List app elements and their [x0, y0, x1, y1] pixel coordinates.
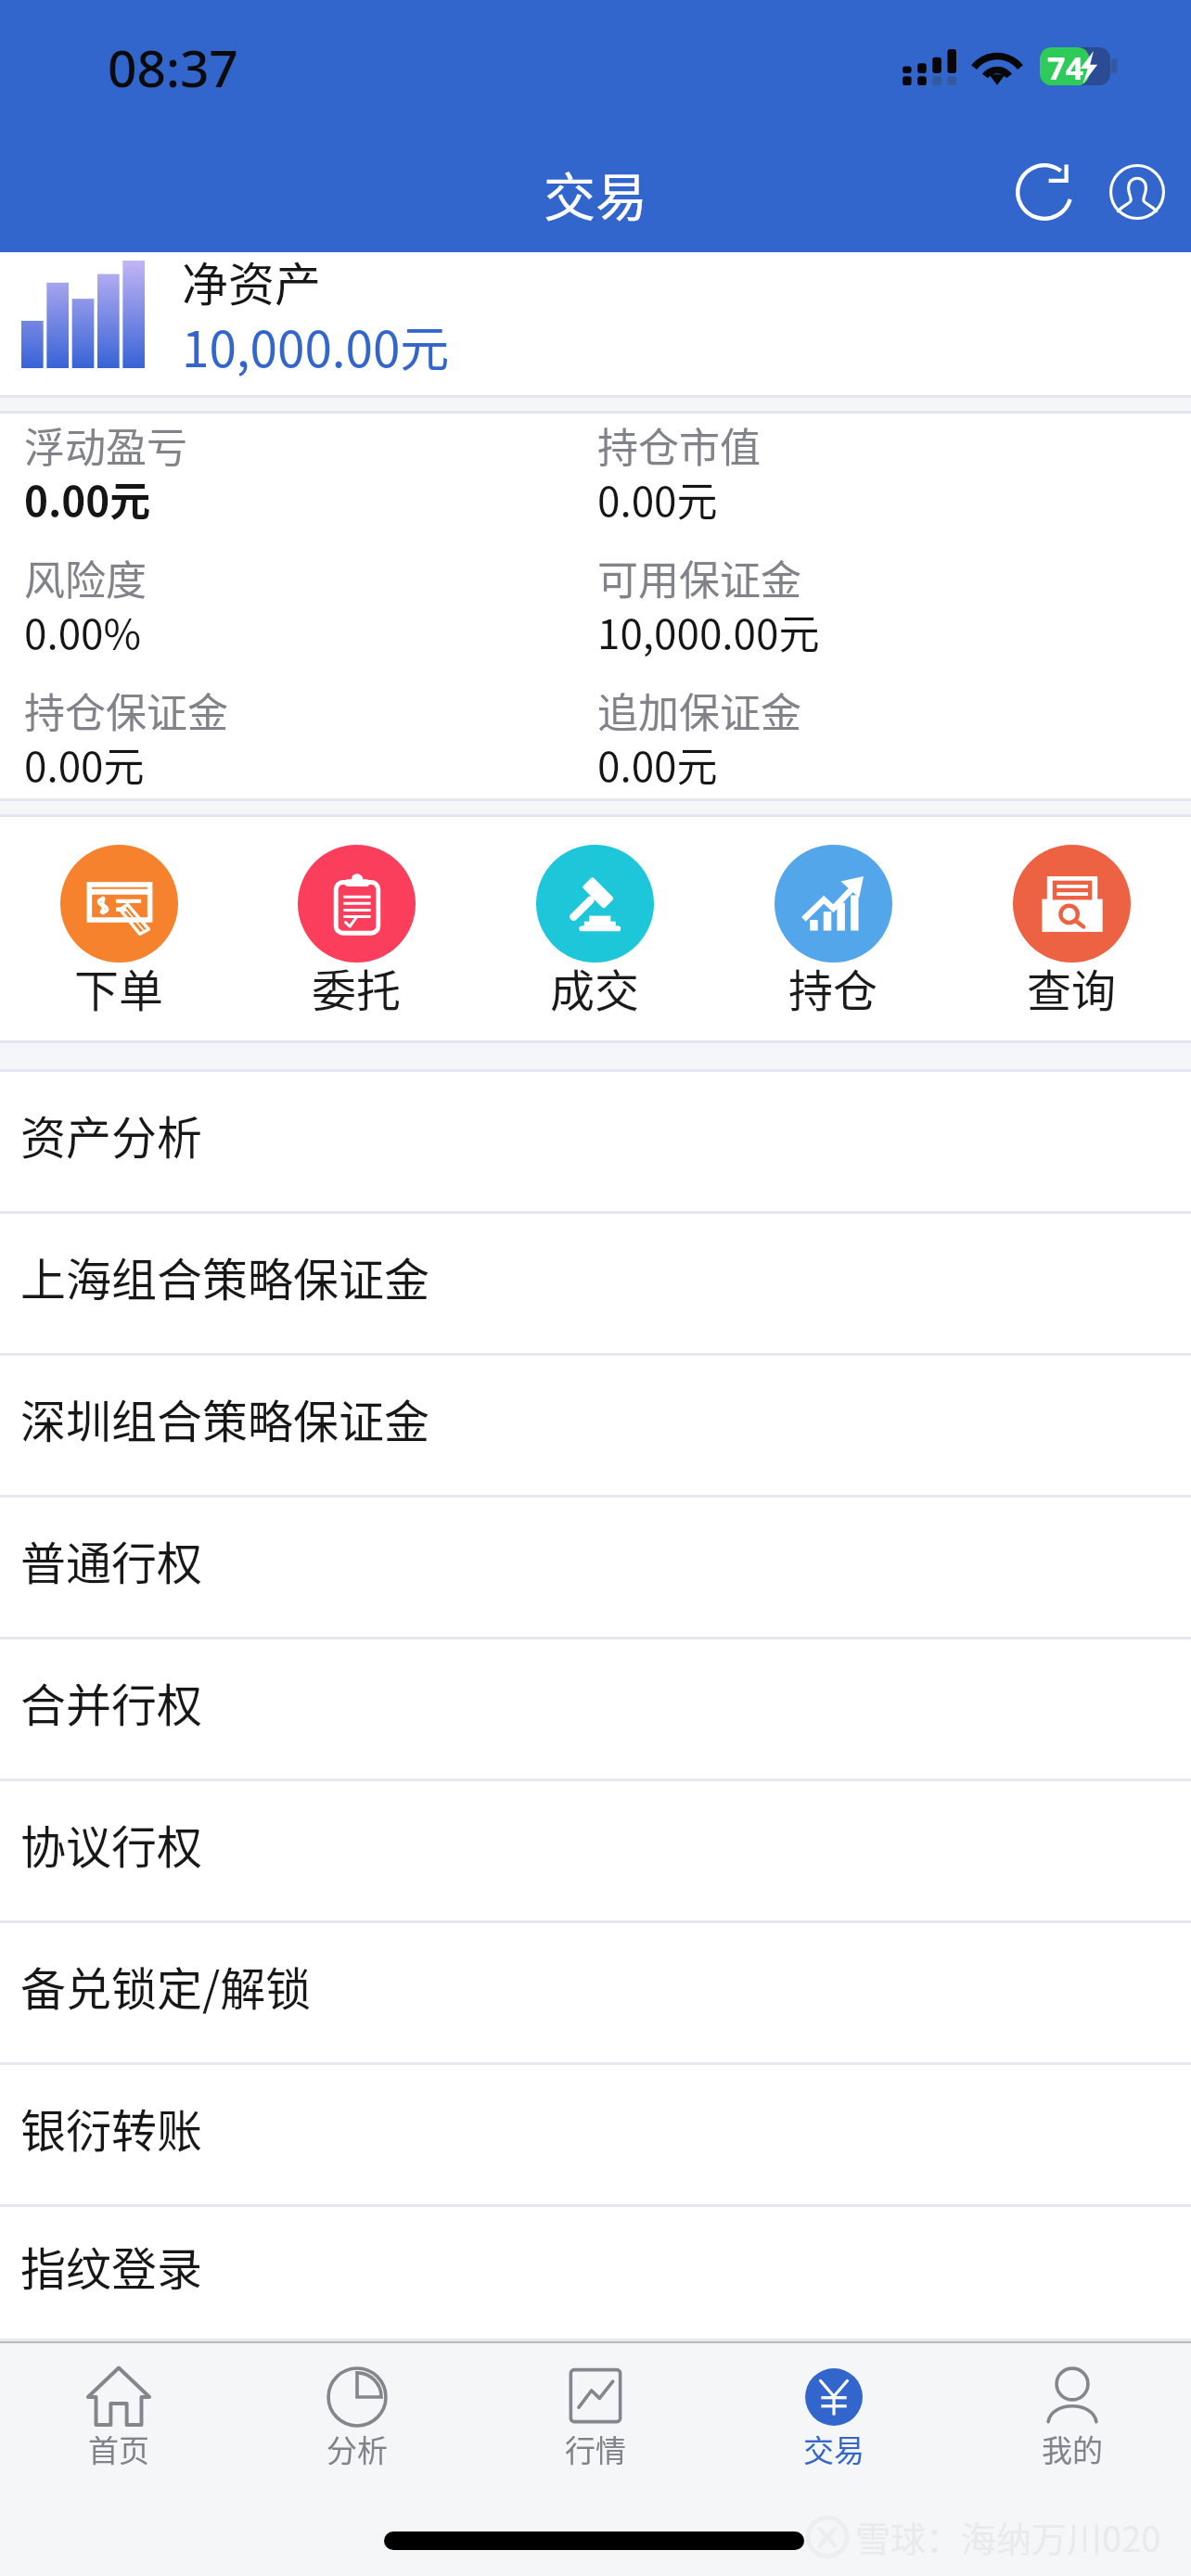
button[interactable]: 分析: [237, 2343, 476, 2478]
staticText: 净资产: [182, 248, 321, 314]
staticText: 雪球：海纳万川020: [855, 2511, 1161, 2562]
staticText: 备兑锁定/解锁: [20, 1953, 312, 2019]
button[interactable]: 刷新: [998, 146, 1091, 238]
button[interactable]: 深圳组合策略保证金: [0, 1356, 1191, 1498]
button[interactable]: 委托: [237, 817, 476, 1040]
button[interactable]: 查询: [953, 817, 1191, 1040]
button[interactable]: 我的: [953, 2343, 1191, 2478]
staticText: 0.00%: [24, 602, 142, 661]
staticText: 成交: [550, 955, 640, 1020]
staticText: 行情: [565, 2427, 626, 2471]
button[interactable]: 普通行权: [0, 1498, 1191, 1639]
staticText: 10,000.00元: [597, 602, 820, 661]
button[interactable]: 成交: [476, 817, 714, 1040]
button[interactable]: 下单: [0, 817, 237, 1040]
button[interactable]: 合并行权: [0, 1639, 1191, 1781]
staticText: 0.00元: [597, 469, 718, 529]
staticText: 10,000.00元: [182, 311, 450, 382]
staticText: 74: [1047, 46, 1083, 84]
staticText: 浮动盈亏: [24, 415, 187, 475]
staticText: 查询: [1027, 955, 1117, 1020]
staticText: 可用保证金: [597, 548, 801, 607]
staticText: 委托: [312, 955, 402, 1020]
staticText: 追加保证金: [597, 681, 801, 740]
button[interactable]: 资产分析: [0, 1072, 1191, 1214]
button[interactable]: 账户: [1091, 146, 1184, 238]
staticText: 下单: [74, 955, 164, 1020]
staticText: 持仓保证金: [24, 681, 228, 740]
staticText: 交易: [544, 156, 647, 231]
staticText: 指纹登录: [20, 2233, 203, 2299]
button[interactable]: 备兑锁定/解锁: [0, 1923, 1191, 2065]
staticText: 我的: [1042, 2427, 1103, 2471]
staticText: 0.00元: [24, 469, 151, 529]
button[interactable]: 净资产: [0, 252, 1191, 395]
staticText: 合并行权: [20, 1669, 203, 1735]
staticText: 深圳组合策略保证金: [20, 1385, 430, 1451]
staticText: 银衍转账: [20, 2095, 203, 2161]
button[interactable]: 行情: [476, 2343, 714, 2478]
staticText: 持仓市值: [597, 415, 761, 475]
staticText: 交易: [803, 2427, 864, 2471]
staticText: 上海组合策略保证金: [20, 1243, 430, 1309]
staticText: 风险度: [24, 548, 147, 607]
staticText: 08:37: [108, 32, 238, 102]
staticText: 首页: [88, 2427, 149, 2471]
button[interactable]: 上海组合策略保证金: [0, 1214, 1191, 1356]
button[interactable]: 指纹登录: [0, 2207, 1191, 2341]
button[interactable]: 银衍转账: [0, 2065, 1191, 2207]
staticText: 协议行权: [20, 1811, 203, 1877]
staticText: 分析: [327, 2427, 388, 2471]
staticText: 资产分析: [20, 1102, 203, 1167]
button[interactable]: 首页: [0, 2343, 237, 2478]
button[interactable]: 持仓: [714, 817, 953, 1040]
button[interactable]: 交易: [714, 2343, 953, 2478]
staticText: 持仓: [788, 955, 878, 1020]
button[interactable]: 协议行权: [0, 1781, 1191, 1923]
staticText: 0.00元: [24, 734, 145, 794]
staticText: 0.00元: [597, 734, 718, 794]
staticText: 普通行权: [20, 1527, 203, 1593]
